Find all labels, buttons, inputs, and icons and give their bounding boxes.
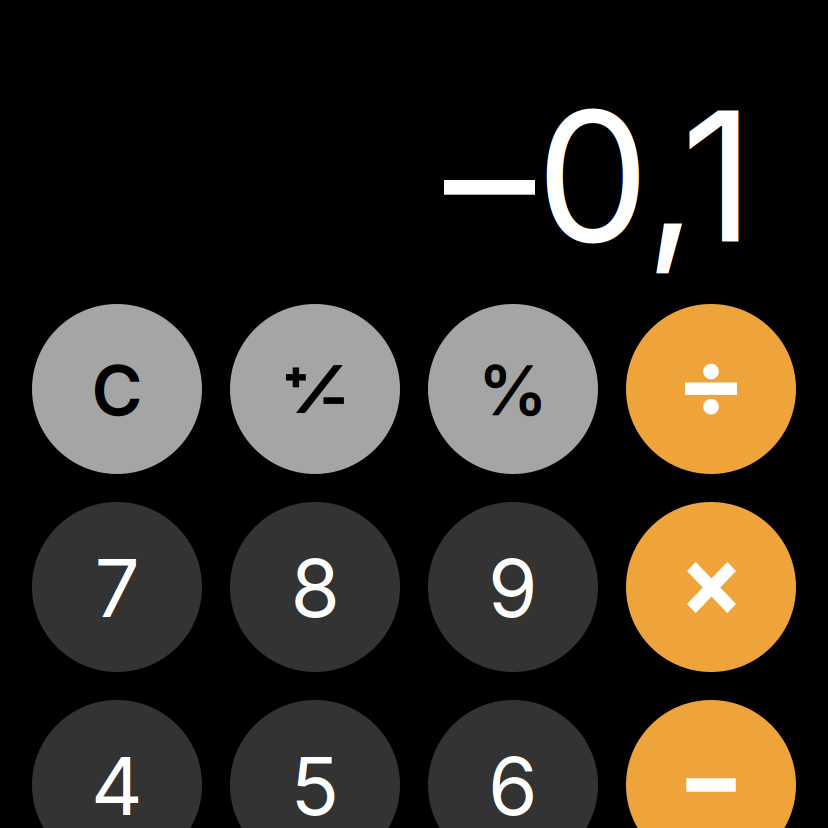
staticText: 9 bbox=[488, 540, 538, 636]
button[interactable]: Minus bbox=[626, 700, 796, 828]
staticText: 6 bbox=[488, 738, 538, 828]
staticText: 4 bbox=[91, 738, 143, 828]
button[interactable]: 9 bbox=[428, 502, 598, 672]
staticText: C bbox=[91, 348, 142, 432]
staticText: % bbox=[478, 348, 548, 432]
button[interactable]: C bbox=[32, 304, 202, 474]
button[interactable]: 7 bbox=[32, 502, 202, 672]
staticText: 5 bbox=[290, 738, 339, 828]
button[interactable]: 4 bbox=[32, 700, 202, 828]
staticText: 8 bbox=[290, 540, 339, 636]
button[interactable]: 5 bbox=[230, 700, 400, 828]
button[interactable]: Divide bbox=[626, 304, 796, 474]
staticText: 0,1 bbox=[536, 67, 754, 285]
button[interactable]: % bbox=[428, 304, 598, 474]
staticText: 7 bbox=[94, 540, 139, 636]
button[interactable]: 8 bbox=[230, 502, 400, 672]
button[interactable]: 6 bbox=[428, 700, 598, 828]
button[interactable]: Multiply bbox=[626, 502, 796, 672]
button[interactable]: Plus Minus bbox=[230, 304, 400, 474]
